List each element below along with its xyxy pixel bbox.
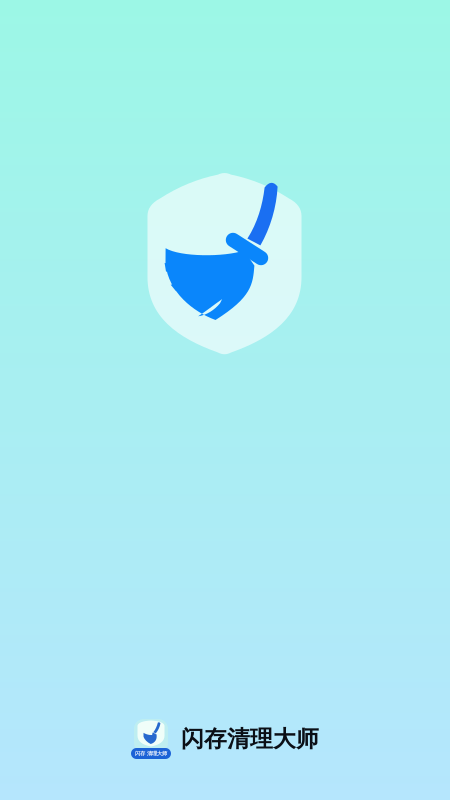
staticText: 闪存 清理大师 — [135, 750, 167, 757]
staticText: 闪存清理大师 — [181, 725, 319, 753]
